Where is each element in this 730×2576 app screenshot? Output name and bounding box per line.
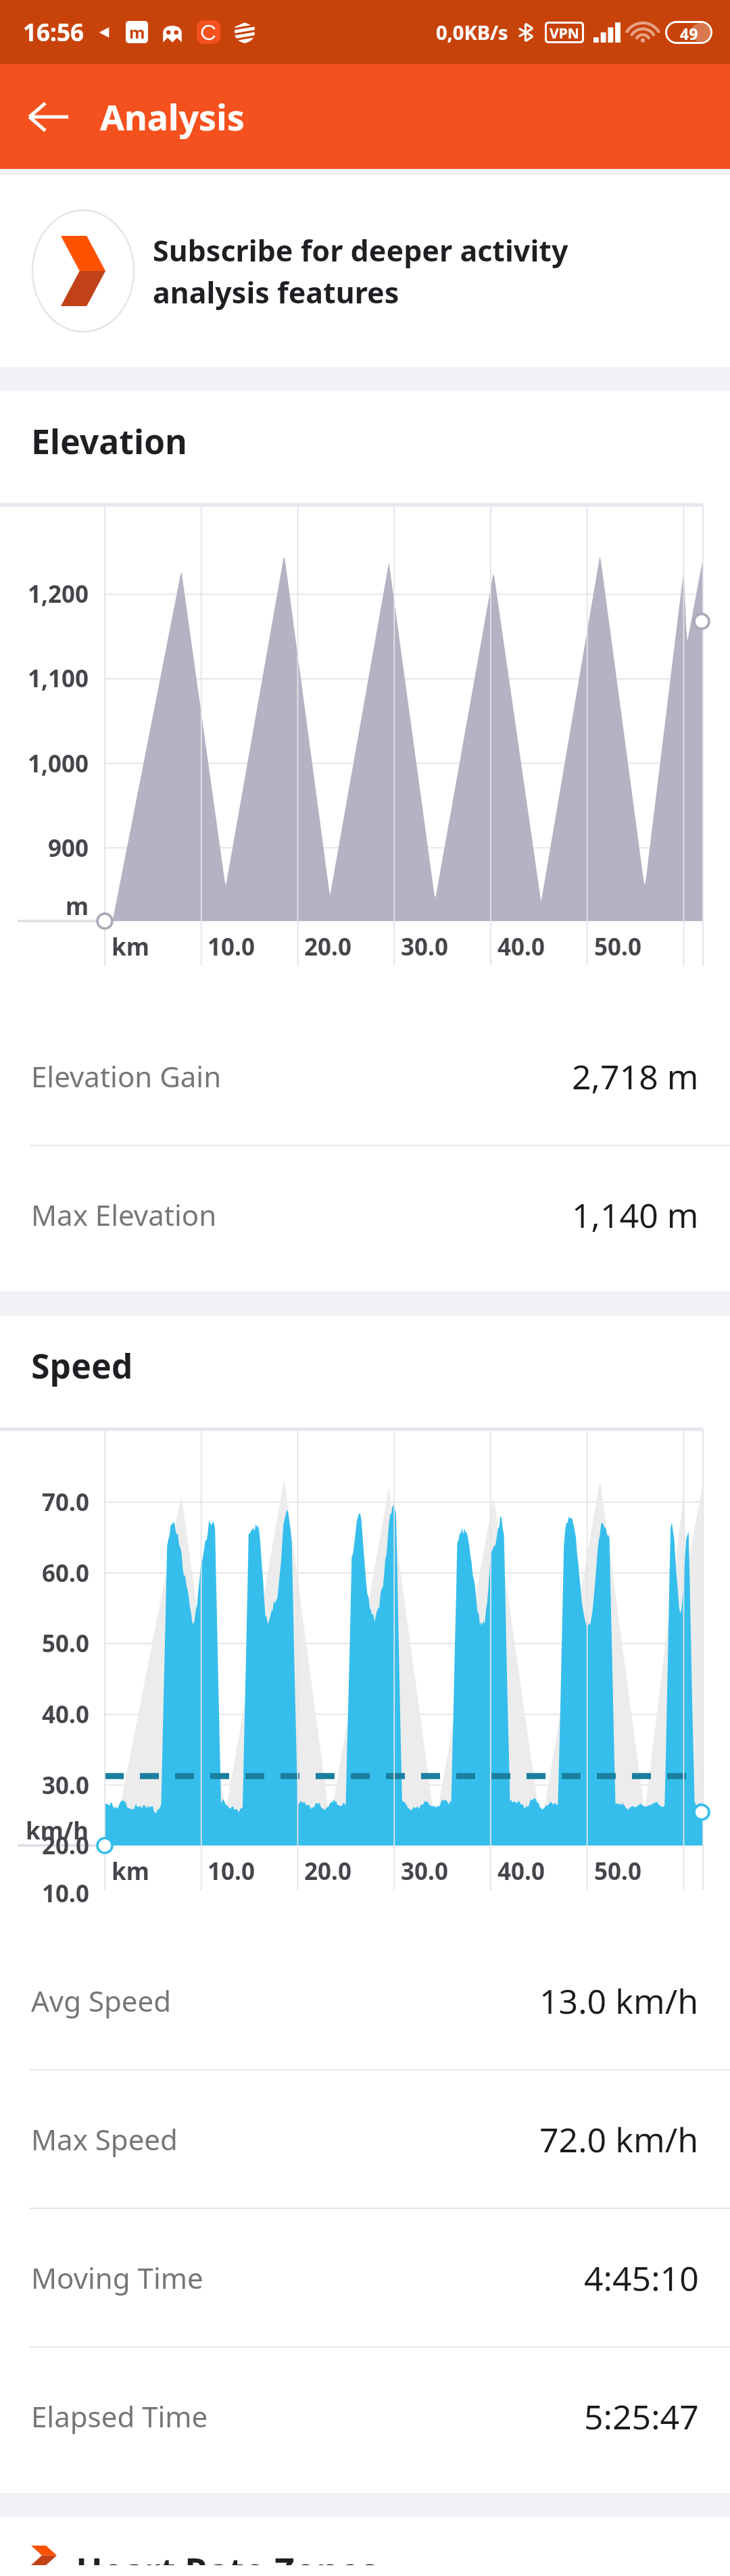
staticText: m xyxy=(66,890,89,922)
staticText: 16:56 xyxy=(23,16,84,49)
staticText: Analysis xyxy=(100,93,245,141)
staticText: 40.0 xyxy=(497,1855,545,1887)
button[interactable]: Max Speed xyxy=(0,2071,730,2208)
staticText: Subscribe for deeper activity analysis f… xyxy=(153,230,568,312)
staticText: 1,000 xyxy=(28,747,89,780)
staticText: 30.0 xyxy=(42,1769,89,1802)
button[interactable]: Elevation Gain xyxy=(0,1008,730,1145)
staticText: Moving Time xyxy=(31,2258,203,2297)
staticText: 4:45:10 xyxy=(584,2255,699,2301)
staticText: Elevation xyxy=(31,418,187,464)
staticText: VPN xyxy=(550,24,579,41)
staticText: Max Speed xyxy=(31,2120,178,2158)
button[interactable]: Avg Speed xyxy=(0,1932,730,2069)
staticText: 49 xyxy=(680,23,698,42)
staticText: Heart Rate Zones xyxy=(76,2546,379,2565)
staticText: 20.0 xyxy=(304,1855,351,1887)
staticText: 900 xyxy=(48,832,89,864)
staticText: 20.0 xyxy=(42,1829,89,1862)
staticText: 13.0 km/h xyxy=(539,1978,699,2024)
staticText: 30.0 xyxy=(401,931,448,963)
staticText: km/h xyxy=(26,1814,89,1847)
staticText: 50.0 xyxy=(42,1627,89,1660)
staticText: 70.0 xyxy=(42,1486,89,1518)
staticText: Elevation Gain xyxy=(31,1057,222,1095)
staticText: Max Elevation xyxy=(31,1195,217,1234)
staticText: km xyxy=(112,931,149,963)
staticText: 1,100 xyxy=(28,662,89,695)
staticText: 0,0KB/s xyxy=(436,19,508,45)
staticText: 10.0 xyxy=(208,1855,255,1887)
button[interactable]: Back xyxy=(11,79,87,155)
staticText: Avg Speed xyxy=(31,1981,172,2020)
button[interactable]: Elapsed Time xyxy=(0,2348,730,2485)
staticText: 50.0 xyxy=(594,1855,641,1887)
staticText: 30.0 xyxy=(401,1855,448,1887)
staticText: 40.0 xyxy=(497,931,545,963)
staticText: Speed xyxy=(31,1343,133,1389)
staticText: 10.0 xyxy=(42,1877,89,1910)
staticText: 40.0 xyxy=(42,1698,89,1731)
staticText: 1,140 m xyxy=(572,1192,699,1238)
button[interactable]: Heart Rate Zones xyxy=(0,2517,730,2576)
staticText: 72.0 km/h xyxy=(539,2116,699,2162)
button[interactable]: Subscribe for deeper activity analysis f… xyxy=(0,175,730,367)
staticText: 5:25:47 xyxy=(584,2394,699,2439)
staticText: km xyxy=(112,1855,149,1887)
button[interactable]: Moving Time xyxy=(0,2209,730,2346)
staticText: 2,718 m xyxy=(572,1054,699,1099)
staticText: 20.0 xyxy=(304,931,351,963)
staticText: Elapsed Time xyxy=(31,2397,208,2435)
staticText: m xyxy=(129,21,145,43)
button[interactable]: Max Elevation xyxy=(0,1146,730,1283)
staticText: 10.0 xyxy=(208,931,255,963)
staticText: 60.0 xyxy=(42,1557,89,1589)
staticText: 1,200 xyxy=(28,578,89,610)
staticText: 50.0 xyxy=(594,931,641,963)
